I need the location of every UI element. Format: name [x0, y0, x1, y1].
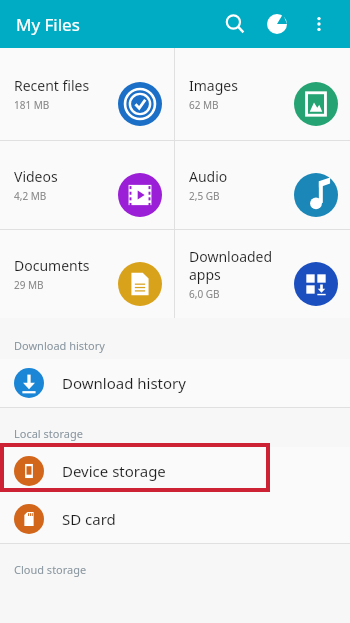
staticText: Download history: [14, 338, 105, 353]
staticText: 4,2 MB: [14, 189, 47, 203]
staticText: Downloaded apps: [189, 247, 288, 284]
staticText: Cloud storage: [14, 562, 87, 577]
staticText: 62 MB: [189, 98, 219, 112]
staticText: Videos: [14, 167, 58, 186]
staticText: 6,0 GB: [189, 287, 220, 301]
button[interactable]: Recent files: [0, 48, 174, 140]
button[interactable]: Device storage: [0, 447, 350, 495]
staticText: Recent files: [14, 76, 90, 95]
button[interactable]: Documents: [0, 230, 174, 318]
button[interactable]: Audio: [175, 141, 350, 229]
button[interactable]: Search: [214, 3, 256, 45]
staticText: Local storage: [14, 426, 83, 441]
button[interactable]: Storage usage: [256, 3, 298, 45]
staticText: Download history: [62, 373, 186, 393]
button[interactable]: Images: [175, 48, 350, 140]
staticText: 29 MB: [14, 278, 44, 292]
button[interactable]: SD card: [0, 495, 350, 543]
button[interactable]: Videos: [0, 141, 174, 229]
staticText: 181 MB: [14, 98, 50, 112]
staticText: 2,5 GB: [189, 189, 220, 203]
staticText: Documents: [14, 256, 90, 275]
staticText: Images: [189, 76, 238, 95]
button[interactable]: More options: [298, 3, 340, 45]
staticText: Audio: [189, 167, 228, 186]
button[interactable]: Download history: [0, 359, 350, 407]
staticText: SD card: [62, 509, 116, 529]
staticText: My Files: [16, 13, 80, 36]
staticText: Device storage: [62, 461, 166, 481]
button[interactable]: Downloaded apps: [175, 230, 350, 318]
